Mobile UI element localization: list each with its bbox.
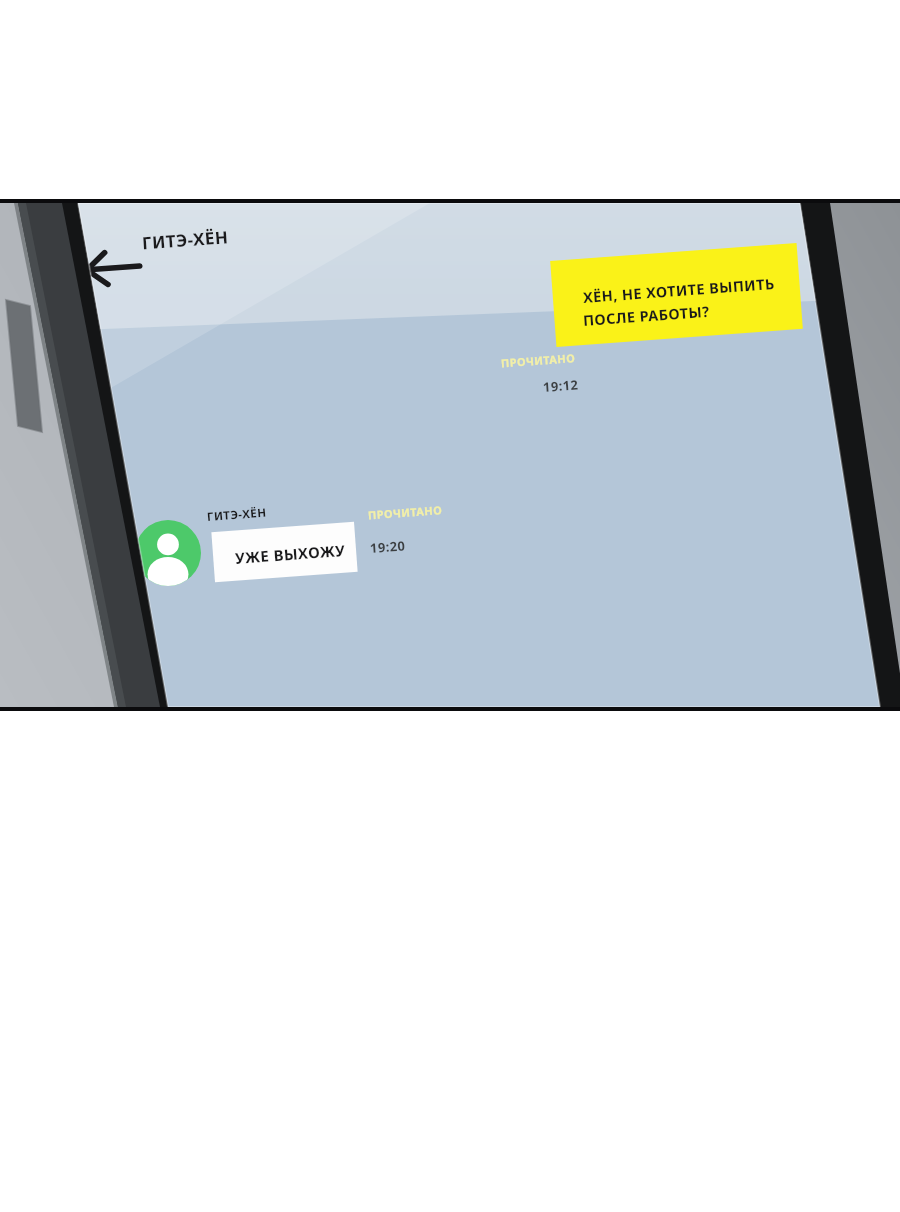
button[interactable] xyxy=(0,0,900,1212)
